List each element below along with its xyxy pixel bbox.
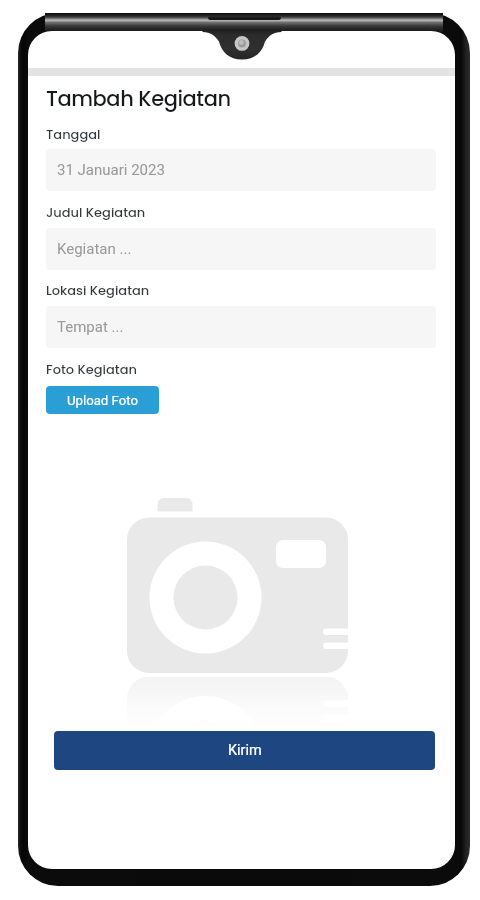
staticText: Upload Foto [67, 393, 138, 408]
staticText: Tanggal [46, 125, 101, 143]
staticText: 31 Januari 2023 [57, 161, 165, 179]
button[interactable]: Kegiatan ... [46, 228, 436, 270]
other: Foto kegiatan [28, 31, 455, 869]
staticText: Kegiatan ... [57, 240, 132, 258]
button[interactable]: Upload Foto [46, 386, 159, 414]
staticText: Kirim [228, 742, 262, 759]
staticText: Lokasi Kegiatan [46, 281, 150, 299]
button[interactable]: 31 Januari 2023 [46, 149, 436, 191]
button[interactable]: Kirim [54, 731, 435, 770]
button[interactable]: Tempat ... [46, 306, 436, 348]
staticText: Foto Kegiatan [46, 360, 137, 378]
staticText: Tambah Kegiatan [46, 84, 231, 113]
staticText: Tempat ... [57, 318, 124, 336]
staticText: Judul Kegiatan [46, 203, 146, 221]
